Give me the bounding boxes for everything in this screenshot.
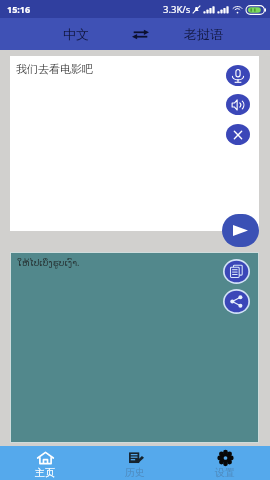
button[interactable]: 老挝语 bbox=[170, 18, 236, 50]
button[interactable]: Share translation bbox=[223, 289, 250, 314]
staticText: 我们去看电影吧 bbox=[16, 62, 93, 76]
button[interactable]: 设置 bbox=[180, 446, 270, 480]
button[interactable]: Swap languages bbox=[118, 18, 163, 50]
button[interactable]: Copy translation bbox=[223, 259, 250, 284]
staticText: 3.3K/s bbox=[163, 3, 191, 16]
staticText: 15:16 bbox=[7, 3, 31, 15]
button[interactable]: Clear text bbox=[226, 124, 250, 145]
staticText: ໃຫ້ໄປເບິ່ງຮູບເງົາ. bbox=[17, 256, 80, 268]
button[interactable]: Voice input bbox=[226, 65, 250, 86]
staticText: 历史 bbox=[125, 466, 145, 479]
staticText: 设置 bbox=[215, 466, 235, 479]
button[interactable]: 历史 bbox=[90, 446, 180, 480]
button[interactable]: 主页 bbox=[0, 446, 90, 480]
staticText: 主页 bbox=[35, 466, 55, 479]
staticText: 中文 bbox=[63, 26, 89, 42]
button[interactable]: Speak bbox=[226, 94, 250, 115]
button[interactable]: 中文 bbox=[46, 18, 106, 50]
button[interactable]: Play translation bbox=[222, 214, 259, 247]
staticText: 老挝语 bbox=[184, 26, 223, 42]
